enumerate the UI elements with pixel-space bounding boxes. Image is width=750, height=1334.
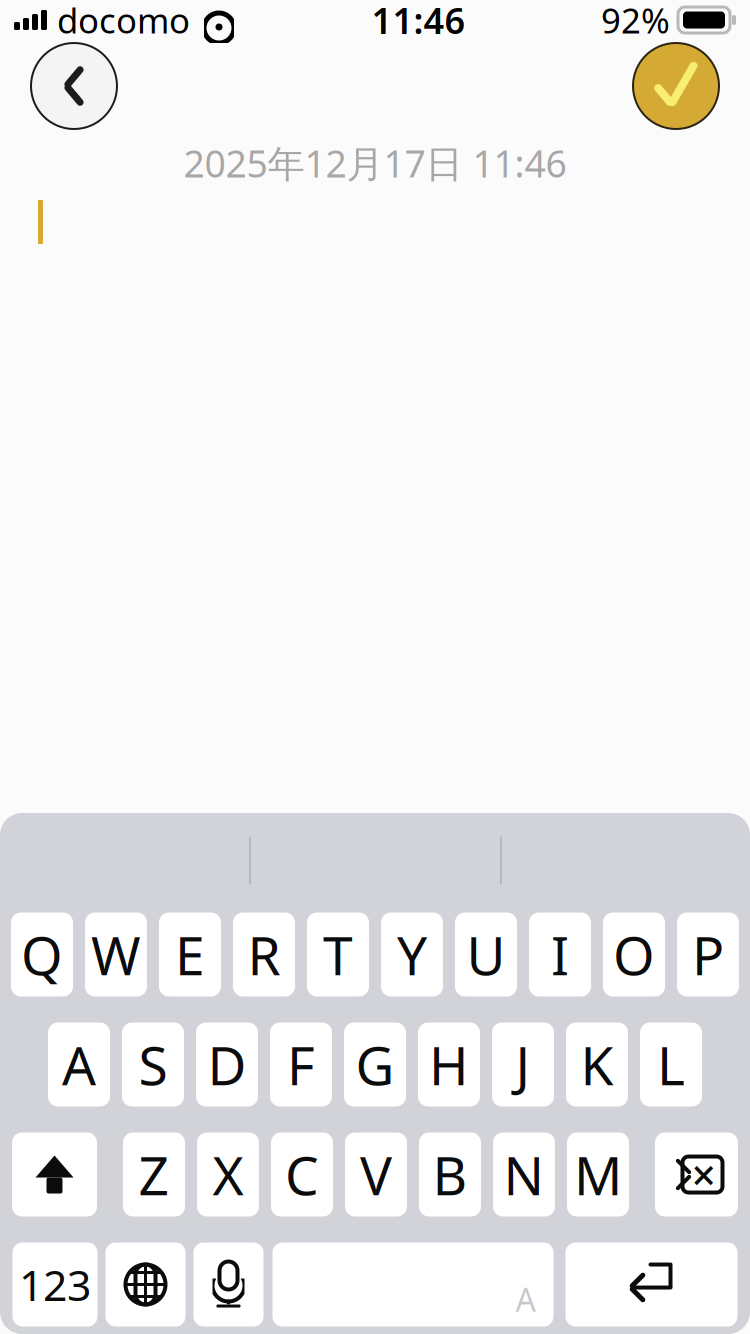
button[interactable]: T — [307, 912, 369, 996]
staticText: J — [515, 1029, 530, 1100]
button[interactable]: D — [196, 1022, 258, 1106]
staticText: S — [138, 1029, 167, 1100]
button[interactable]: N — [493, 1132, 555, 1216]
button[interactable]: Z — [123, 1132, 185, 1216]
staticText: B — [432, 1139, 467, 1210]
button[interactable]: R — [233, 912, 295, 996]
staticText: Z — [138, 1139, 169, 1210]
button[interactable]: F — [270, 1022, 332, 1106]
staticText: M — [574, 1139, 622, 1210]
button[interactable]: S — [122, 1022, 184, 1106]
staticText: E — [175, 919, 205, 990]
button[interactable]: I — [529, 912, 591, 996]
staticText: V — [360, 1139, 392, 1210]
staticText: O — [613, 919, 655, 990]
staticText: A — [62, 1029, 96, 1100]
button[interactable]: Done — [633, 43, 719, 129]
staticText: F — [287, 1029, 315, 1100]
button[interactable]: Space — [272, 1242, 553, 1326]
staticText: × — [691, 1146, 715, 1203]
button[interactable]: Q — [11, 912, 73, 996]
staticText: docomo — [57, 0, 190, 43]
staticText: Y — [397, 919, 427, 990]
button[interactable]: Return — [565, 1242, 737, 1326]
staticText: U — [466, 919, 505, 990]
button[interactable]: W — [85, 912, 147, 996]
button[interactable]: Back — [31, 43, 117, 129]
button[interactable]: M — [567, 1132, 629, 1216]
button[interactable]: H — [418, 1022, 480, 1106]
button[interactable]: P — [677, 912, 739, 996]
button[interactable]: O — [603, 912, 665, 996]
button[interactable]: K — [566, 1022, 628, 1106]
button[interactable]: E — [159, 912, 221, 996]
button[interactable]: G — [344, 1022, 406, 1106]
staticText: A — [515, 1278, 535, 1320]
staticText: T — [323, 919, 353, 990]
button[interactable]: X — [197, 1132, 259, 1216]
button[interactable]: Next keyboard — [105, 1242, 185, 1326]
staticText: X — [212, 1139, 243, 1210]
button[interactable]: J — [492, 1022, 554, 1106]
staticText: I — [551, 919, 569, 990]
button[interactable]: B — [419, 1132, 481, 1216]
staticText: D — [207, 1029, 246, 1100]
button[interactable]: Y — [381, 912, 443, 996]
staticText: 123 — [19, 1256, 91, 1313]
button[interactable]: V — [345, 1132, 407, 1216]
staticText: 92% — [601, 0, 670, 43]
staticText: N — [503, 1139, 544, 1210]
staticText: W — [91, 919, 141, 990]
button[interactable]: Delete — [655, 1132, 738, 1216]
staticText: R — [247, 919, 280, 990]
staticText: C — [285, 1139, 319, 1210]
staticText: P — [692, 919, 724, 990]
staticText: G — [355, 1029, 394, 1100]
staticText: L — [657, 1029, 685, 1100]
button[interactable]: C — [271, 1132, 333, 1216]
staticText: K — [580, 1029, 613, 1100]
staticText: 2025年12月17日 11:46 — [183, 138, 566, 188]
button[interactable]: Shift — [12, 1132, 97, 1216]
staticText: H — [429, 1029, 469, 1100]
button[interactable]: L — [640, 1022, 702, 1106]
staticText: 11:46 — [371, 0, 465, 44]
button[interactable]: Dictate — [193, 1242, 263, 1326]
staticText: Q — [21, 919, 63, 990]
button[interactable]: 123 — [12, 1242, 97, 1326]
button[interactable]: U — [455, 912, 517, 996]
button[interactable]: A — [48, 1022, 110, 1106]
